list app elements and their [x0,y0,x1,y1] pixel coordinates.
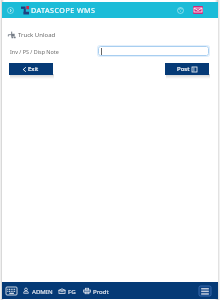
staticText: Truck Unload [18,31,56,39]
staticText: Exit [28,65,39,73]
button[interactable]: Exit [9,63,53,75]
staticText: Prodt [93,287,109,295]
button[interactable]: Truck Unload [7,30,218,39]
button[interactable]: Help [174,4,186,16]
button[interactable]: Messages [193,6,203,14]
staticText: ADMIN [32,287,53,295]
staticText: FG [68,287,76,295]
button[interactable]: Menu [198,285,212,297]
staticText: DATASCOPE WMS [31,5,96,15]
button[interactable]: Prodt [83,287,109,295]
button[interactable]: Post [165,63,209,75]
staticText: Inv / PS / Disp Note [10,48,59,55]
staticText: Post [177,65,190,73]
button[interactable]: Navigate [5,5,15,15]
button[interactable]: Keyboard [5,286,18,296]
button[interactable]: FG [58,287,76,295]
button[interactable] [98,46,209,56]
button[interactable]: ADMIN [22,287,53,295]
